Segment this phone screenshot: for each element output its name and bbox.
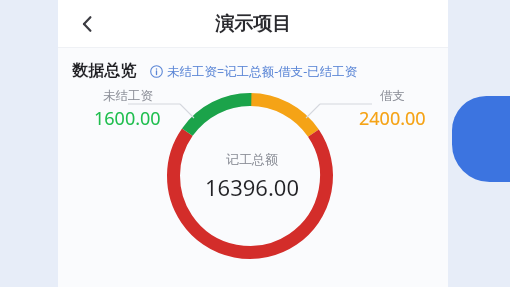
staticText: 1600.00 bbox=[94, 106, 161, 131]
staticText: 未结工资=记工总额-借支-已结工资 bbox=[167, 63, 358, 80]
staticText: 数据总览 bbox=[72, 61, 136, 81]
button[interactable]: 未结工资=记工总额-借支-已结工资 bbox=[150, 63, 358, 80]
staticText: 16396.00 bbox=[205, 172, 299, 202]
staticText: 记工总额 bbox=[226, 151, 278, 167]
button[interactable]: 记工总额 bbox=[205, 151, 299, 202]
button[interactable]: 未结工资 bbox=[94, 88, 161, 131]
staticText: 演示项目 bbox=[215, 12, 291, 36]
other: 收支占比环形图 bbox=[58, 81, 448, 287]
button[interactable]: 借支 bbox=[359, 88, 426, 131]
button[interactable]: Back bbox=[68, 4, 108, 44]
staticText: 未结工资 bbox=[103, 88, 153, 104]
staticText: 2400.00 bbox=[359, 106, 426, 131]
staticText: 借支 bbox=[380, 88, 405, 104]
